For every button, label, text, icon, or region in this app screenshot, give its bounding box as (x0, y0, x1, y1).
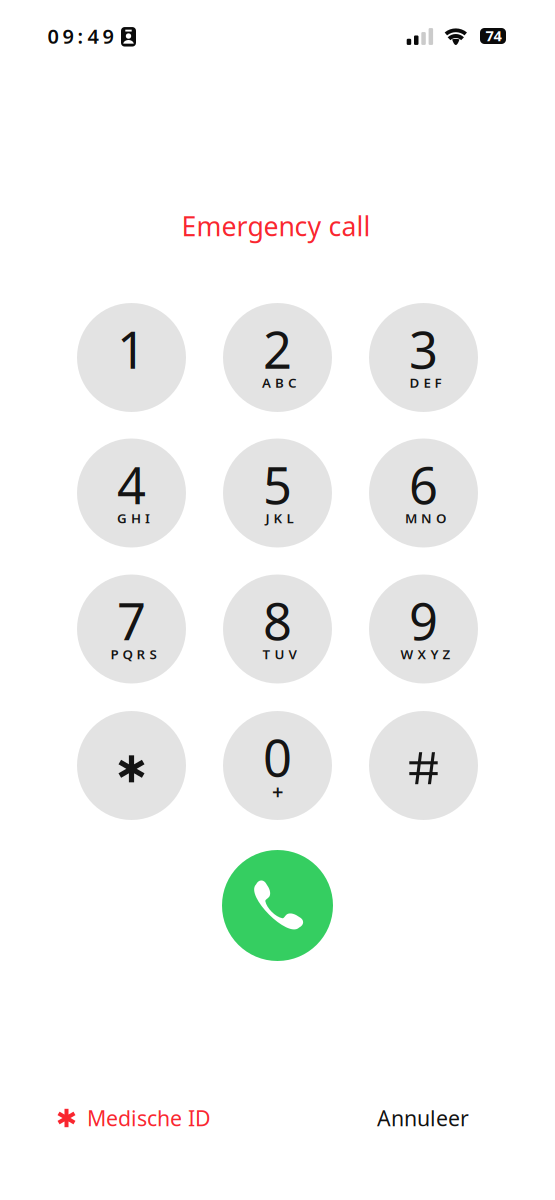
button[interactable]: Medische ID (57, 1104, 211, 1132)
button[interactable]: Annuleer (377, 1104, 469, 1132)
staticText: 4 (117, 451, 146, 518)
button[interactable]: 2 (223, 303, 332, 412)
button[interactable]: 8 (223, 574, 332, 683)
button[interactable]: 6 (369, 438, 478, 547)
staticText: Annuleer (377, 1104, 469, 1132)
button[interactable]: Pound (369, 711, 478, 820)
button[interactable]: Star (77, 711, 186, 820)
staticText: MNO (405, 509, 446, 527)
staticText: TUV (262, 645, 296, 663)
button[interactable]: 0 (223, 711, 332, 820)
staticText: GHI (117, 509, 150, 527)
staticText: ABC (262, 374, 297, 391)
staticText: 09:49 (47, 23, 113, 49)
staticText: 1 (117, 315, 146, 383)
button[interactable]: 4 (77, 438, 186, 547)
staticText: 5 (263, 451, 292, 518)
button[interactable]: 5 (223, 438, 332, 547)
staticText: + (272, 778, 283, 805)
staticText: PQRS (110, 645, 156, 663)
staticText: 9 (409, 587, 438, 654)
staticText: DEF (409, 374, 441, 391)
staticText: 6 (409, 451, 438, 518)
button[interactable]: 1 (77, 303, 186, 412)
staticText: 2 (263, 315, 292, 383)
staticText: Medische ID (87, 1104, 211, 1132)
staticText: WXYZ (400, 645, 450, 663)
button[interactable]: 3 (369, 303, 478, 412)
button[interactable]: 9 (369, 574, 478, 683)
button[interactable]: 7 (77, 574, 186, 683)
staticText: 0 (263, 723, 292, 791)
staticText: Emergency call (181, 208, 370, 244)
staticText: 74 (485, 26, 501, 45)
staticText: 3 (409, 315, 438, 383)
staticText: 8 (263, 587, 292, 654)
staticText: 7 (117, 587, 146, 654)
staticText: JKL (265, 509, 293, 527)
button[interactable]: Call (222, 850, 333, 961)
